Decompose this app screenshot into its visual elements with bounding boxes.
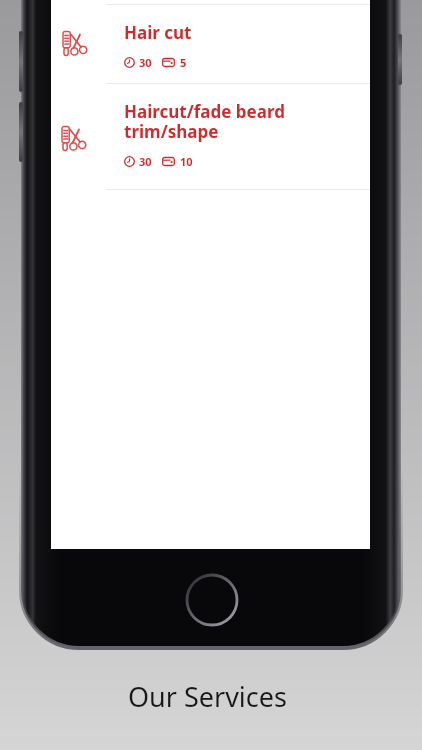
staticText: Hair cut	[124, 21, 192, 44]
staticText: 10	[180, 154, 193, 169]
button[interactable]: Haircut/fade beard trim/shape	[51, 84, 370, 189]
staticText: Our Services	[128, 678, 287, 715]
button[interactable]: Hair cut	[51, 5, 370, 83]
staticText: 30	[139, 55, 152, 70]
staticText: 5	[180, 55, 187, 70]
staticText: 30	[139, 154, 152, 169]
staticText: Haircut/fade beard trim/shape	[124, 100, 285, 143]
